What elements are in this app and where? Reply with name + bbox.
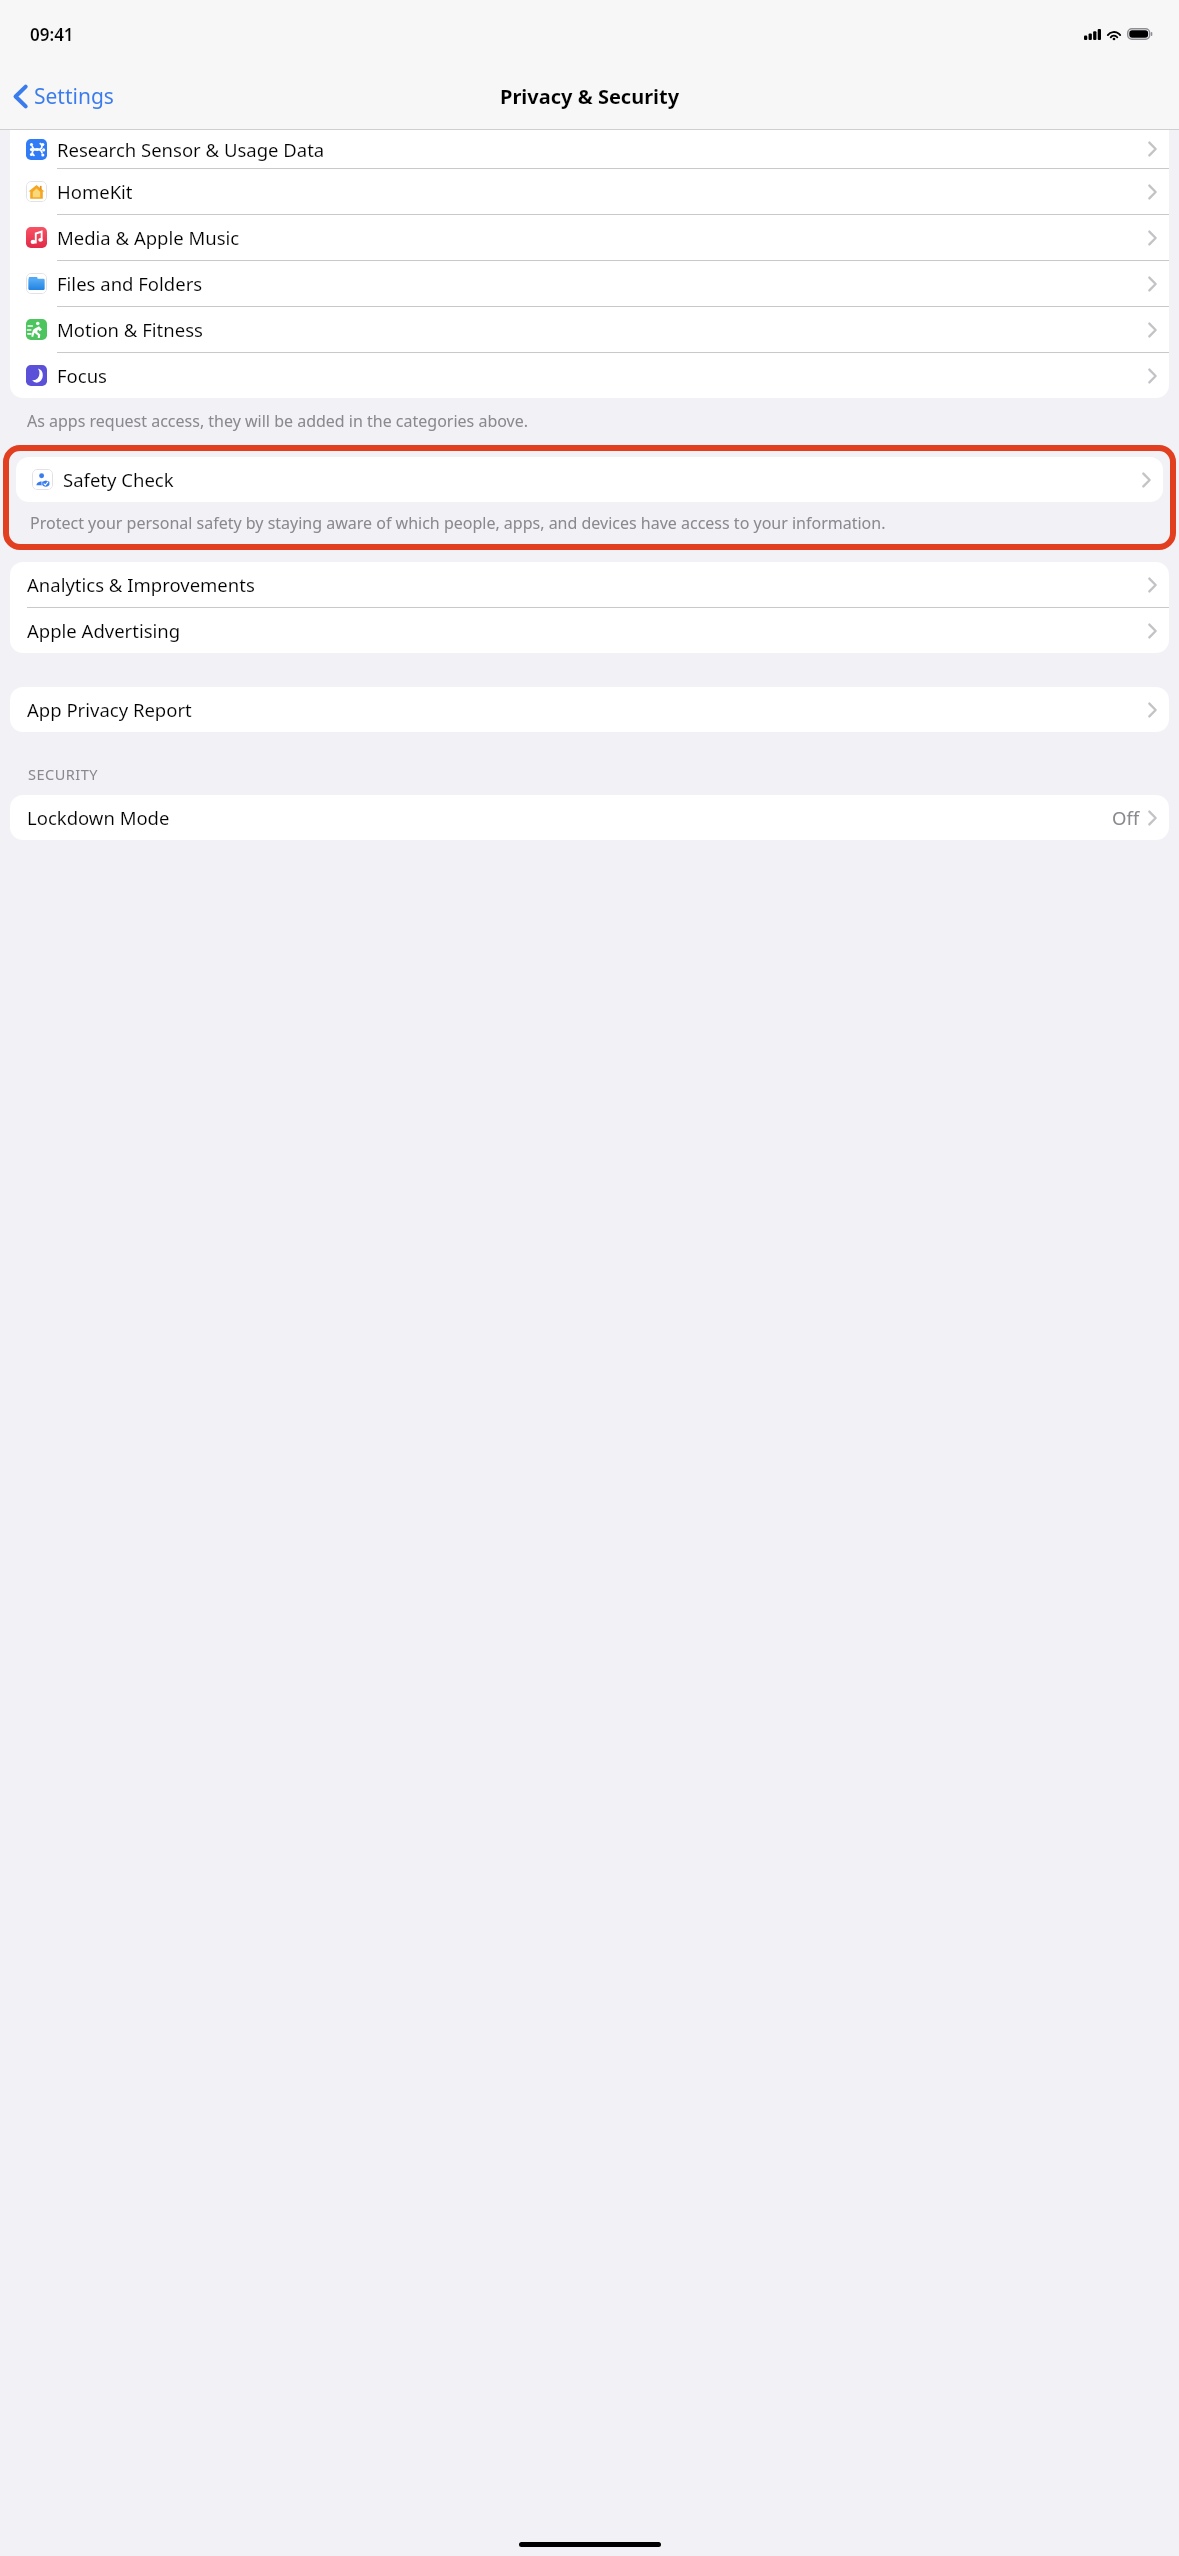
button[interactable]: Analytics & Improvements <box>10 562 1169 607</box>
button[interactable]: Focus <box>10 353 1169 398</box>
button[interactable]: Research Sensor & Usage Data <box>10 130 1169 168</box>
button[interactable]: Safety Check <box>16 457 1163 502</box>
staticText: 09:41 <box>30 23 74 46</box>
staticText: App Privacy Report <box>27 697 192 722</box>
button[interactable]: Settings <box>0 74 126 119</box>
staticText: Privacy & Security <box>500 83 680 110</box>
staticText: Files and Folders <box>57 271 203 296</box>
staticText: Media & Apple Music <box>57 225 240 250</box>
staticText: Motion & Fitness <box>57 317 203 342</box>
staticText: Off <box>1112 805 1140 830</box>
staticText: Safety Check <box>63 467 174 492</box>
staticText: Analytics & Improvements <box>27 572 255 597</box>
staticText: Settings <box>34 82 114 111</box>
staticText: Apple Advertising <box>27 618 181 643</box>
button[interactable]: Files and Folders <box>10 261 1169 306</box>
staticText: Lockdown Mode <box>27 805 170 830</box>
button[interactable]: Media & Apple Music <box>10 215 1169 260</box>
button[interactable]: Motion & Fitness <box>10 307 1169 352</box>
button[interactable]: Lockdown Mode <box>10 795 1169 840</box>
staticText: Protect your personal safety by staying … <box>30 512 886 534</box>
staticText: Focus <box>57 363 107 388</box>
staticText: HomeKit <box>57 179 133 204</box>
staticText: As apps request access, they will be add… <box>27 410 529 432</box>
button[interactable]: HomeKit <box>10 169 1169 214</box>
staticText: SECURITY <box>28 764 98 784</box>
staticText: Research Sensor & Usage Data <box>57 137 325 162</box>
button[interactable]: App Privacy Report <box>10 687 1169 732</box>
button[interactable]: Apple Advertising <box>10 608 1169 653</box>
